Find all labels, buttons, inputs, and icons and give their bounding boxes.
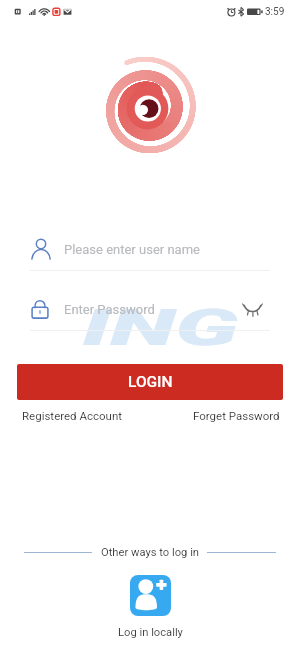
- button[interactable]: Please enter user name: [0, 234, 300, 265]
- button[interactable]: Registered Account: [22, 409, 123, 422]
- staticText: ING: [82, 300, 240, 357]
- staticText: 3:59: [265, 6, 285, 18]
- staticText: Please enter user name: [64, 242, 200, 257]
- staticText: LOGIN: [128, 373, 173, 391]
- button[interactable]: Log in locally: [130, 575, 171, 616]
- button[interactable]: Log in locally: [118, 626, 183, 639]
- button[interactable]: LOGIN: [17, 364, 283, 400]
- staticText: Other ways to log in: [101, 546, 200, 559]
- button[interactable]: Forget Password: [193, 409, 280, 422]
- staticText: Enter Password: [64, 302, 155, 317]
- button[interactable]: Show password: [236, 293, 268, 325]
- button[interactable]: Enter Password: [0, 294, 300, 325]
